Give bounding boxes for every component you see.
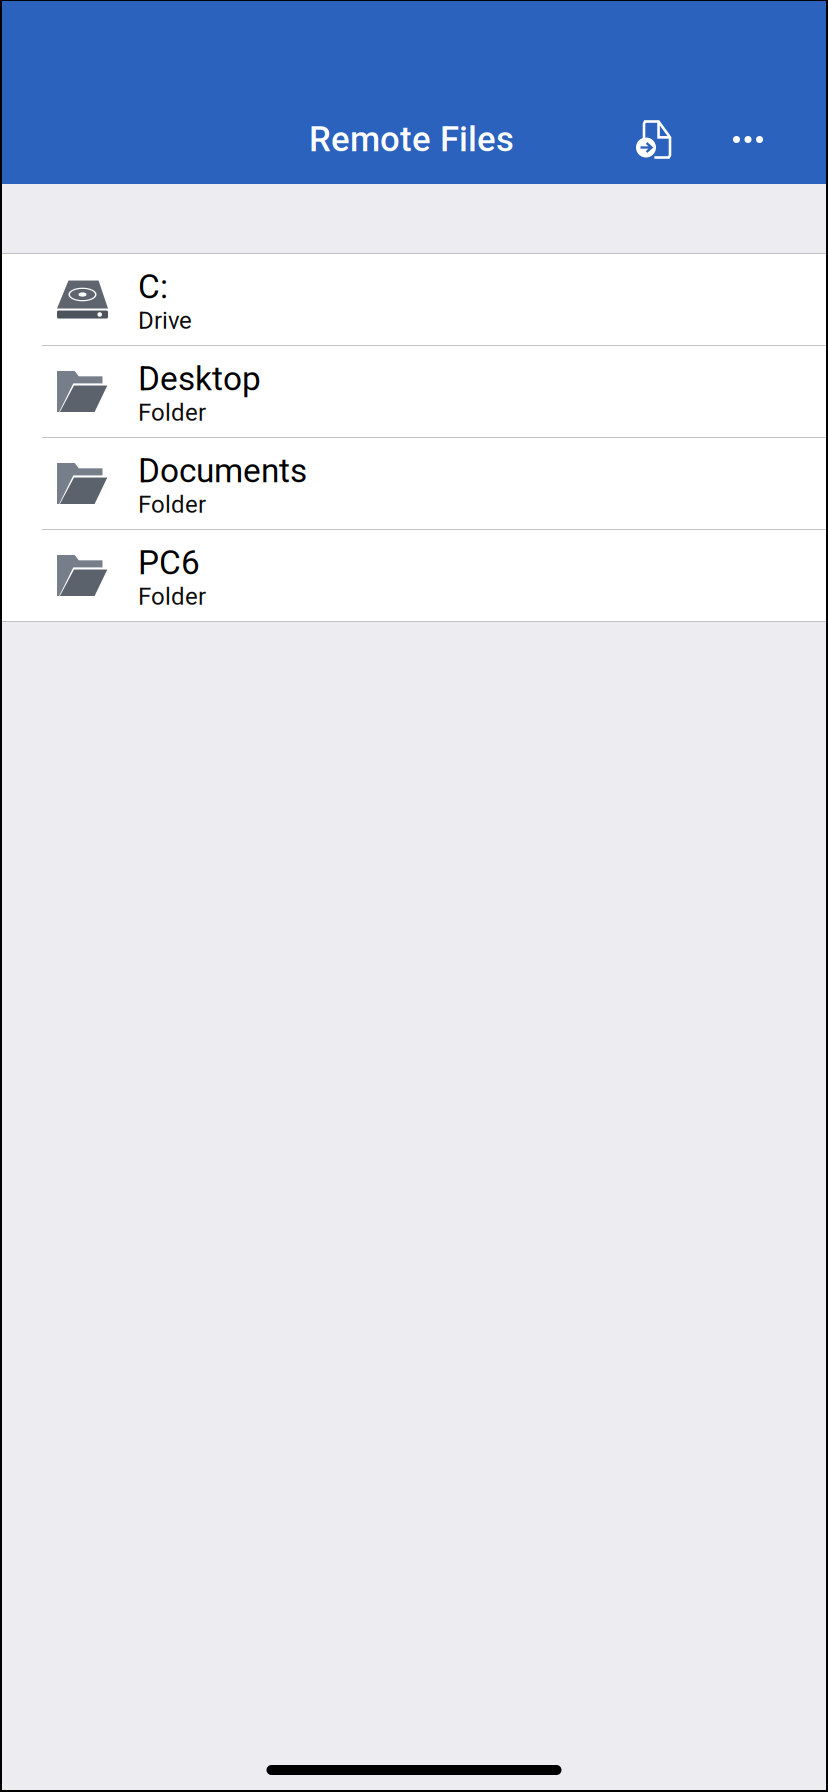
staticText: C: [138,267,168,306]
button[interactable]: Import file [625,109,681,169]
staticText: Drive [138,306,192,335]
button[interactable]: More options [720,109,776,169]
staticText: Desktop [138,359,261,398]
staticText: Folder [138,582,206,611]
button[interactable]: PC6 [2,530,826,621]
staticText: Documents [138,451,307,490]
staticText: PC6 [138,543,200,582]
button[interactable]: C: [2,254,826,345]
staticText: Folder [138,490,206,519]
button[interactable]: Documents [2,438,826,529]
staticText: Folder [138,398,206,427]
button[interactable]: Desktop [2,346,826,437]
staticText: Remote Files [309,119,514,160]
